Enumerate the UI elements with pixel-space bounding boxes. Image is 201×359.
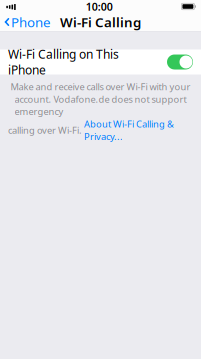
button[interactable]: Phone [0, 10, 51, 34]
staticText: account. Vodafone.de does not support em… [14, 93, 186, 118]
staticText: About Wi-Fi Calling & Privacy... [84, 118, 174, 142]
button[interactable]: Wi-Fi Calling on This iPhone [167, 54, 193, 69]
staticText: Phone [11, 13, 51, 31]
staticText: 10:00 [86, 0, 113, 14]
staticText: Wi-Fi Calling [60, 13, 141, 31]
staticText: calling over Wi-Fi. [8, 124, 84, 136]
button[interactable]: About Wi-Fi Calling & Privacy... [84, 118, 174, 142]
staticText: Wi-Fi Calling on This iPhone [8, 46, 119, 78]
staticText: Make and receive calls over Wi-Fi with y… [10, 80, 190, 93]
button[interactable]: Wi-Fi Calling on This iPhone [0, 49, 201, 74]
